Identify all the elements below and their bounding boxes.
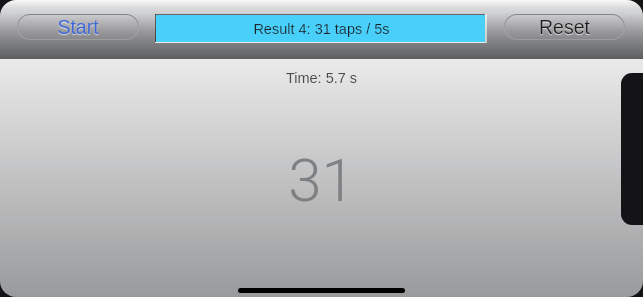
staticText: Result 4: 31 taps / 5s — [253, 21, 390, 37]
button[interactable]: Reset — [504, 14, 625, 40]
staticText: Reset — [539, 16, 590, 38]
staticText: 31 — [0, 145, 643, 215]
staticText: Start — [57, 16, 99, 38]
button[interactable]: Result 4: 31 taps / 5s — [155, 14, 487, 43]
button[interactable]: Start — [17, 14, 139, 40]
staticText: Time: 5.7 s — [0, 70, 643, 86]
